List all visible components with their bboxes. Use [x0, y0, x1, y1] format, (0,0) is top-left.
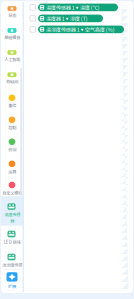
staticText: LED 矩阵: [3, 239, 20, 245]
button[interactable]: 状态: [1, 6, 23, 19]
button[interactable]: 人工智能: [1, 50, 23, 63]
staticText: 侦测: [8, 147, 16, 153]
staticText: 控制: [8, 125, 16, 131]
button[interactable]: 控制: [1, 116, 23, 131]
button[interactable]: 自定义模块: [1, 182, 23, 196]
button[interactable]: 扩展: [1, 272, 23, 289]
staticText: 温湿度传感: [2, 262, 22, 268]
button[interactable]: 温湿度传感器 1 ▾ 空气高度 (%): [38, 26, 124, 33]
staticText: 人工智能: [4, 56, 20, 63]
staticText: 事件: [8, 103, 16, 109]
button[interactable]: Toggle block visibility: [30, 27, 36, 32]
button[interactable]: 温度器 1 ▾ 湿度 (T): [38, 15, 103, 22]
button[interactable]: 物联网: [1, 72, 23, 85]
button[interactable]: 侦测: [1, 138, 23, 153]
staticText: 自定义模块: [2, 190, 22, 196]
button[interactable]: 温度传感器 1 ▾ 温度 (℃): [38, 4, 118, 11]
staticText: 温度传感 器: [4, 211, 20, 224]
button[interactable]: 事件: [1, 94, 23, 109]
button[interactable]: LED 矩阵: [1, 231, 23, 245]
staticText: 温度器 1 ▾ 湿度 (T): [46, 14, 88, 22]
button[interactable]: Toggle block visibility: [30, 16, 36, 21]
staticText: 温湿度传感器 1 ▾ 空气高度 (%): [46, 25, 115, 33]
staticText: 运算: [8, 169, 16, 175]
button[interactable]: 温度传感 器: [1, 203, 23, 224]
button[interactable]: 基础模音: [1, 28, 23, 41]
button[interactable]: Toggle block visibility: [30, 5, 36, 10]
staticText: 扩展: [8, 283, 16, 289]
button[interactable]: 运算: [1, 160, 23, 175]
staticText: 基础模音: [4, 34, 20, 41]
staticText: 状态: [8, 12, 16, 19]
button[interactable]: 温湿度传感: [1, 254, 23, 268]
staticText: 物联网: [6, 79, 18, 85]
staticText: 温度传感器 1 ▾ 温度 (℃): [46, 3, 100, 11]
